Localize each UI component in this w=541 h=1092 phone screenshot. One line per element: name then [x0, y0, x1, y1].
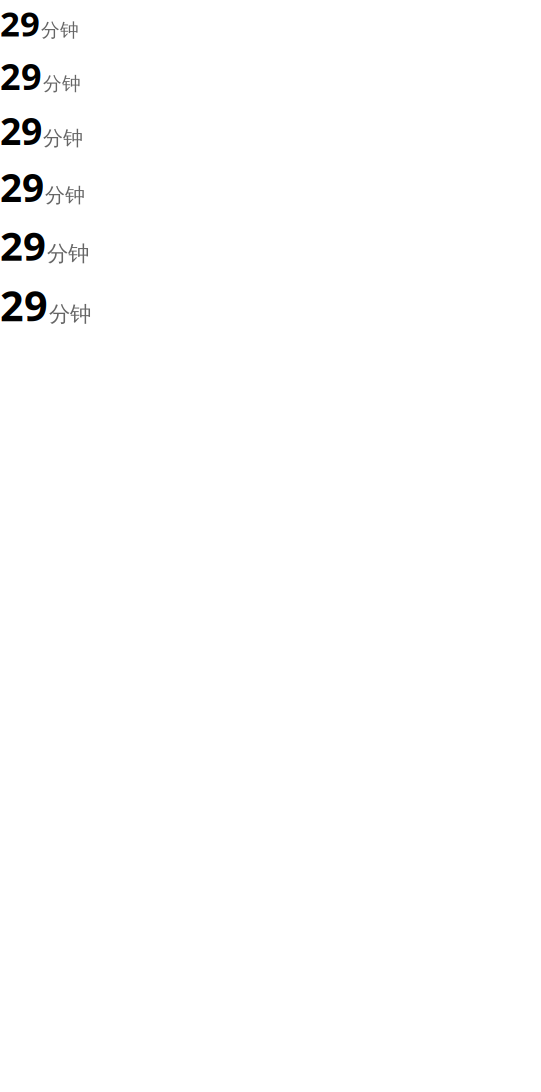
staticText: 分钟: [47, 241, 89, 267]
staticText: 29: [0, 106, 42, 155]
staticText: 29: [0, 0, 40, 46]
staticText: 分钟: [49, 301, 91, 327]
staticText: 29: [0, 278, 48, 333]
staticText: 29: [0, 52, 42, 100]
staticText: 29: [0, 219, 46, 272]
staticText: 分钟: [43, 72, 81, 95]
staticText: 29: [0, 161, 44, 213]
staticText: 分钟: [45, 183, 85, 208]
staticText: 分钟: [41, 19, 79, 42]
staticText: 分钟: [43, 126, 83, 151]
